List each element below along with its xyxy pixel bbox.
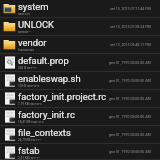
staticText: gen 01, 1970 03:00:00 AM xyxy=(109,133,151,137)
staticText: 2,41 KB rw-r--r-- xyxy=(18,156,40,160)
staticText: gen 01, 1970 03:00:00 AM xyxy=(109,150,151,154)
staticText: set 15, 2015 05:48:11 PM xyxy=(110,43,151,47)
staticText: gen 01, 1970 03:00:00 AM xyxy=(109,79,151,83)
staticText: 18,41 KB rwxr-xr-x xyxy=(18,120,44,124)
button[interactable]: fstab xyxy=(0,144,160,160)
staticText: enableswap.sh xyxy=(18,73,81,84)
staticText: factory_init.project.rc xyxy=(18,91,107,102)
button[interactable]: file_contexts xyxy=(0,126,160,144)
staticText: UNLOCK xyxy=(18,19,55,30)
button[interactable]: factory_init.project.rc xyxy=(0,90,160,108)
button[interactable]: factory_init.rc xyxy=(0,108,160,126)
staticText: rwxrwx--- xyxy=(18,30,31,34)
button[interactable]: default.prop xyxy=(0,54,160,72)
staticText: file_contexts xyxy=(18,127,71,138)
staticText: 26,79 KB rw-r--r-- xyxy=(18,138,42,142)
staticText: factory_init.rc xyxy=(18,109,75,120)
staticText: lrwxrwxrwx xyxy=(18,48,35,52)
staticText: vendor xyxy=(18,37,47,48)
staticText: fstab xyxy=(18,145,40,156)
staticText: gen 01, 1970 03:00:00 AM xyxy=(109,97,151,101)
staticText: rwxr-xr-x xyxy=(18,12,31,16)
staticText: default.prop xyxy=(18,55,69,66)
button[interactable]: system xyxy=(0,0,160,18)
staticText: 135 B rwxr-xr-x xyxy=(18,84,40,88)
staticText: gen 01, 1970 03:00:00 AM xyxy=(109,115,151,119)
staticText: set 15, 2015 07:17:44 PM xyxy=(110,7,151,11)
staticText: gen 01, 1970 03:00:00 AM xyxy=(109,61,151,65)
staticText: 262 B rw-r--r-- xyxy=(18,66,38,70)
button[interactable]: UNLOCK xyxy=(0,18,160,36)
staticText: set 15, 2015 07:28:24 PM xyxy=(110,25,151,29)
button[interactable]: enableswap.sh xyxy=(0,72,160,90)
staticText: system xyxy=(18,1,49,12)
staticText: 1,79 KB rwxr-xr-x xyxy=(18,102,42,106)
button[interactable]: vendor xyxy=(0,36,160,54)
